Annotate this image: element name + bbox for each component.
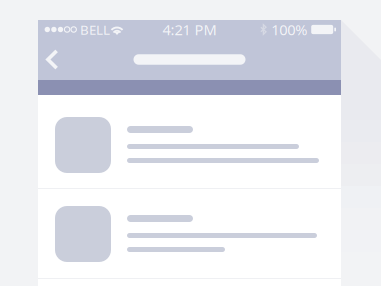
staticText: 4:21 PM [162,20,216,39]
button[interactable] [38,95,341,188]
staticText: 100% [271,20,307,39]
staticText: BELL [80,21,110,38]
button[interactable]: Back [38,41,70,78]
button[interactable] [38,189,341,278]
